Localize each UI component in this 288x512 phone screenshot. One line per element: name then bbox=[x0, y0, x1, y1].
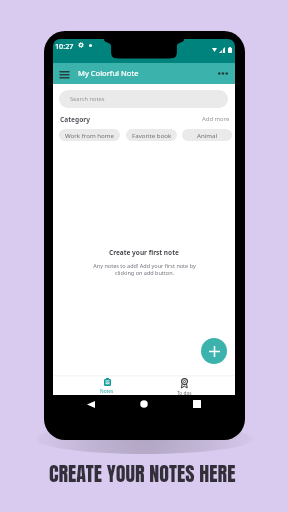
staticText: My Colorful Note bbox=[78, 68, 139, 78]
staticText: Search notes bbox=[70, 95, 105, 103]
button[interactable]: Add more bbox=[202, 115, 230, 123]
button[interactable]: Animal bbox=[182, 129, 232, 141]
staticText: Work from home bbox=[65, 131, 115, 139]
button[interactable]: Search notes bbox=[59, 90, 228, 108]
staticText: Any notes to add! Add your first note by… bbox=[93, 262, 196, 276]
staticText: 10:27 bbox=[55, 41, 74, 51]
staticText: Favorite book bbox=[132, 131, 172, 139]
staticText: Add more bbox=[202, 115, 230, 123]
staticText: Category bbox=[60, 115, 90, 124]
staticText: CREATE YOUR NOTES HERE bbox=[49, 458, 236, 488]
staticText: Create your first note bbox=[109, 248, 179, 257]
button[interactable]: Back bbox=[84, 397, 98, 411]
staticText: To dos bbox=[177, 390, 192, 396]
button[interactable]: Favorite book bbox=[126, 129, 177, 141]
button[interactable]: Open navigation menu bbox=[57, 63, 72, 84]
staticText: Animal bbox=[197, 131, 218, 139]
button[interactable]: Add note bbox=[201, 338, 227, 364]
button[interactable]: Home bbox=[137, 397, 151, 411]
button[interactable]: To dos bbox=[164, 375, 204, 396]
staticText: Notes bbox=[100, 388, 114, 395]
button[interactable]: Notes bbox=[87, 375, 127, 396]
button[interactable]: Recent apps bbox=[190, 397, 204, 411]
button[interactable]: More options bbox=[214, 63, 232, 84]
button[interactable]: Work from home bbox=[59, 129, 120, 141]
